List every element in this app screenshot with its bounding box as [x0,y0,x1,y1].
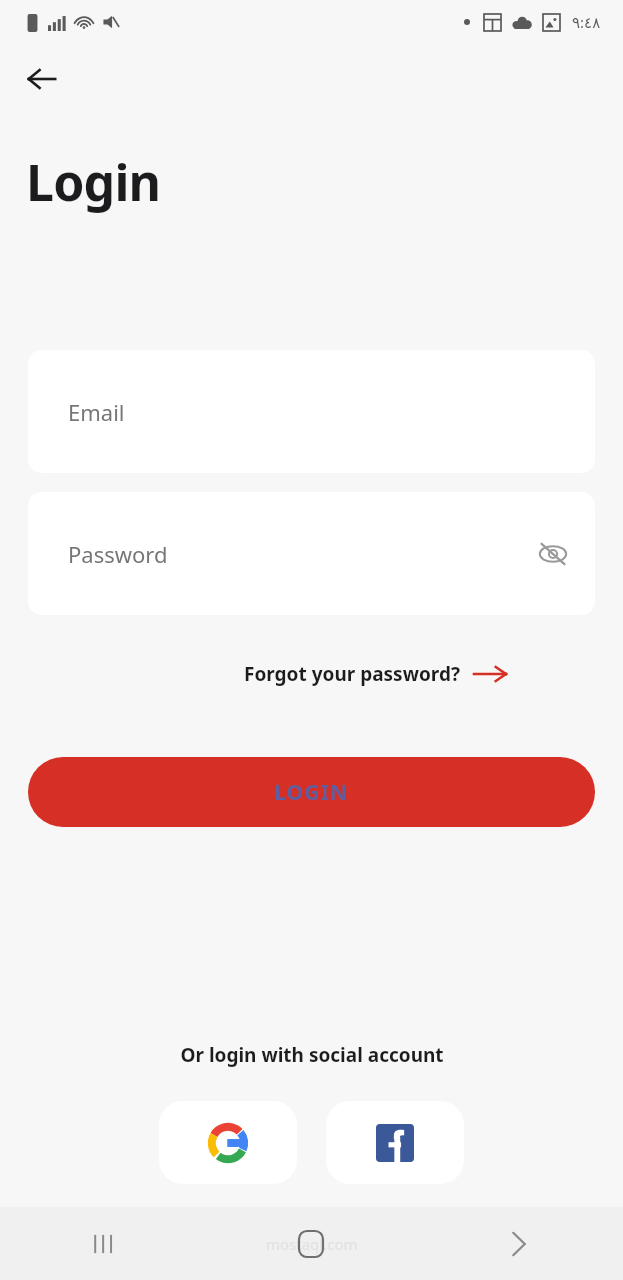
button[interactable]: Home [207,1207,415,1280]
button[interactable]: Back [415,1207,623,1280]
button[interactable]: Password [28,492,595,615]
button[interactable]: Back [18,55,66,103]
staticText: mostaql.com [266,1234,358,1254]
staticText: Forgot your password? [244,661,460,687]
button[interactable]: Email [28,350,595,473]
staticText: LOGIN [274,778,349,807]
button[interactable]: Show password [531,532,575,576]
button[interactable]: LOGIN [28,757,595,827]
staticText: Email [68,397,125,427]
button[interactable]: Forgot your password? [244,652,506,696]
staticText: Login [26,148,161,216]
staticText: Or login with social account [180,1042,444,1068]
button[interactable]: Sign in with Facebook [326,1101,464,1184]
button[interactable]: Sign in with Google [159,1101,297,1184]
staticText: Password [68,539,168,569]
button[interactable]: Recents [0,1207,207,1280]
staticText: ٩:٤٨ [572,12,601,32]
